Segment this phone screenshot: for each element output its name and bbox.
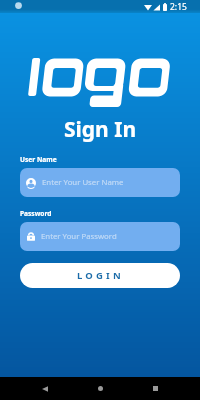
staticText: Enter Your Password [41,231,117,242]
button[interactable]: Home [90,377,110,400]
button[interactable]: Enter Your Password [20,222,180,251]
staticText: 2:15 [170,1,187,13]
staticText: Enter Your User Name [42,177,124,188]
staticText: Password [20,209,52,218]
staticText: User Name [20,155,57,164]
staticText: Sign In [0,115,200,144]
button[interactable]: Recents [110,377,200,400]
button[interactable]: Enter Your User Name [20,168,180,197]
staticText: LOGIN [77,269,124,282]
button[interactable]: LOGIN [20,263,180,288]
button[interactable]: Back [0,377,90,400]
